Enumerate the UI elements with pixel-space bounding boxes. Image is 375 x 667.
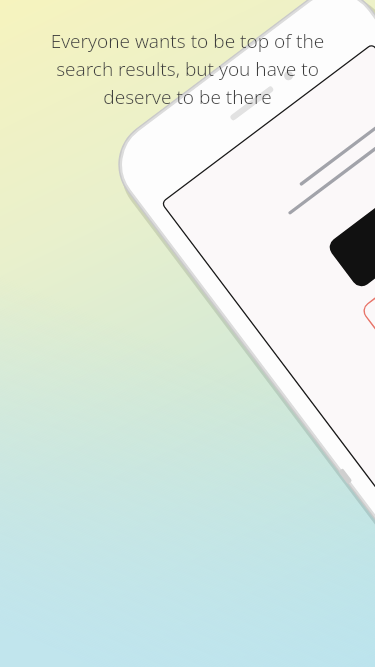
staticText: Everyone wants to be top of the search r…	[24, 28, 351, 110]
button[interactable]: Phone app preview	[0, 0, 375, 667]
button[interactable]: Everyone wants to be top of the search r…	[24, 28, 351, 110]
